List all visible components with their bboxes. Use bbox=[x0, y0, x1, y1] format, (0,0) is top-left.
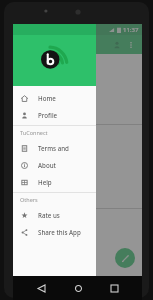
staticText: Others bbox=[20, 196, 38, 203]
button[interactable]: More options bbox=[124, 38, 138, 52]
button[interactable] bbox=[13, 24, 96, 86]
staticText: Profile bbox=[38, 111, 58, 119]
staticText: Share this App bbox=[38, 228, 81, 236]
staticText: Help bbox=[38, 178, 52, 186]
button[interactable]: Profile bbox=[13, 106, 96, 123]
button[interactable]: Rate us bbox=[13, 206, 96, 223]
staticText: Rate us bbox=[38, 211, 60, 219]
button[interactable]: Account bbox=[110, 38, 124, 52]
button[interactable] bbox=[13, 54, 142, 125]
button[interactable]: Home bbox=[13, 89, 96, 106]
button[interactable]: About bbox=[13, 156, 96, 173]
button[interactable]: Help bbox=[13, 173, 96, 190]
staticText: TuConnect bbox=[20, 129, 48, 136]
staticText: About bbox=[38, 161, 56, 169]
button[interactable] bbox=[13, 125, 142, 209]
button[interactable]: Recent apps bbox=[106, 281, 122, 295]
button[interactable]: Back bbox=[33, 281, 49, 295]
staticText: 11:37 bbox=[123, 26, 139, 34]
button[interactable]: Compose bbox=[115, 248, 135, 268]
button[interactable]: Terms and Conditions bbox=[13, 139, 96, 156]
staticText: Terms and Conditions bbox=[38, 144, 96, 152]
staticText: TuConnect bbox=[35, 39, 76, 50]
button[interactable]: Home bbox=[70, 281, 86, 295]
button[interactable] bbox=[13, 209, 142, 276]
staticText: Home bbox=[38, 94, 56, 102]
button[interactable]: Share this App bbox=[13, 223, 96, 240]
